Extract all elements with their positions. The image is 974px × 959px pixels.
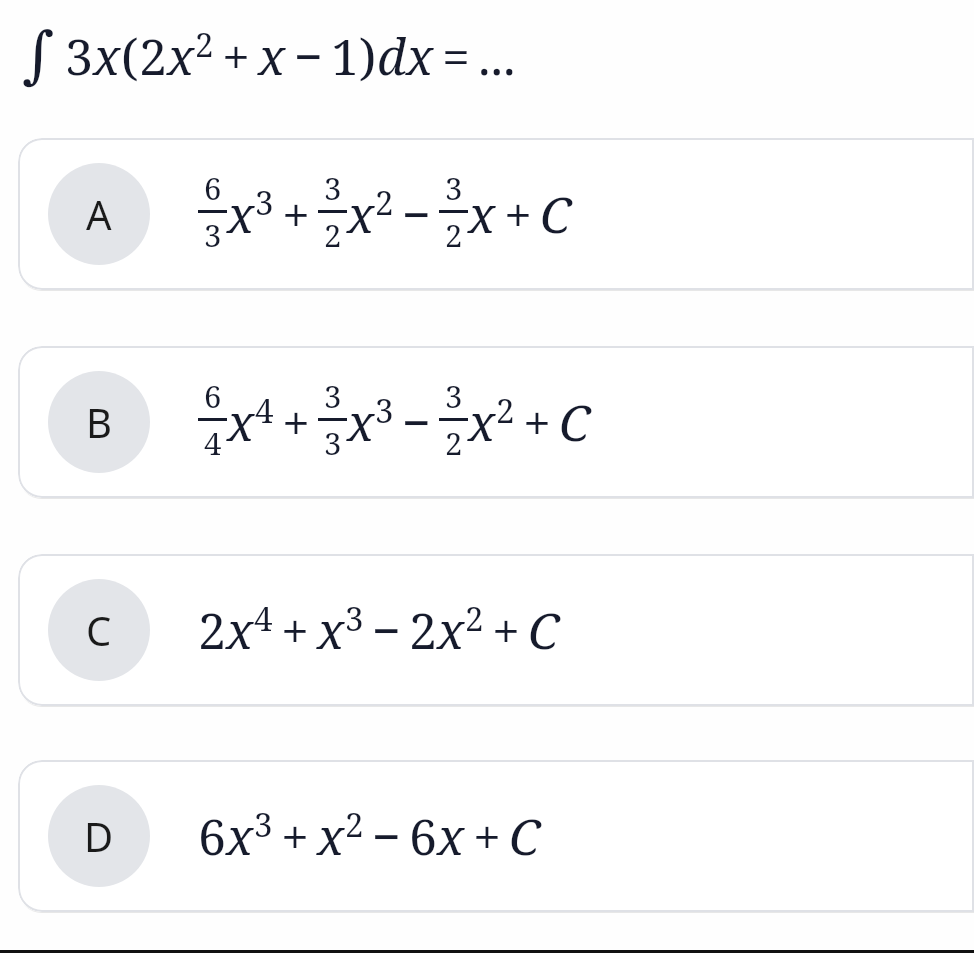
staticText: 3 <box>65 22 93 90</box>
staticText: 2 <box>345 802 364 847</box>
staticText: + <box>492 596 520 664</box>
staticText: x <box>468 180 496 248</box>
staticText: 2 <box>496 388 515 433</box>
staticText: x <box>468 388 496 456</box>
staticText: x <box>93 22 121 90</box>
button[interactable]: D <box>18 760 974 912</box>
staticText: x <box>227 388 255 456</box>
staticText: − <box>402 388 431 456</box>
staticText: 2 <box>198 596 226 664</box>
staticText: − <box>372 802 401 870</box>
staticText: ( <box>121 22 139 90</box>
staticText: 2 <box>445 422 463 464</box>
staticText: x <box>347 180 375 248</box>
button[interactable]: B <box>18 346 974 498</box>
staticText: 2 <box>445 214 463 256</box>
staticText: + <box>504 180 532 248</box>
staticText: C <box>86 603 112 657</box>
staticText: 3 <box>345 596 364 641</box>
staticText: C <box>540 180 572 248</box>
staticText: C <box>528 596 560 664</box>
staticText: x <box>437 596 465 664</box>
staticText: + <box>523 388 551 456</box>
staticText: x <box>317 596 345 664</box>
staticText: A <box>86 187 112 241</box>
staticText: x <box>167 22 195 90</box>
staticText: ... <box>478 22 516 90</box>
staticText: 3 <box>324 167 342 209</box>
staticText: 3 <box>254 802 273 847</box>
button[interactable]: C <box>18 554 974 706</box>
staticText: 2 <box>139 22 167 90</box>
staticText: x <box>258 22 286 90</box>
staticText: 4 <box>254 596 273 641</box>
staticText: x <box>226 802 254 870</box>
staticText: x <box>347 388 375 456</box>
staticText: = <box>442 22 470 90</box>
staticText: 2 <box>195 22 214 67</box>
staticText: − <box>294 22 323 90</box>
staticText: 3 <box>204 214 222 256</box>
staticText: D <box>84 809 114 863</box>
staticText: 3 <box>324 375 342 417</box>
staticText: 6 <box>204 167 222 209</box>
staticText: ) <box>359 22 377 90</box>
staticText: C <box>559 388 591 456</box>
staticText: 6 <box>204 375 222 417</box>
button[interactable]: A <box>18 138 974 290</box>
staticText: 2 <box>465 596 484 641</box>
staticText: + <box>281 596 309 664</box>
staticText: x <box>226 596 254 664</box>
staticText: + <box>473 802 501 870</box>
staticText: x <box>406 22 434 90</box>
staticText: 2 <box>409 596 437 664</box>
staticText: 1 <box>331 22 359 90</box>
staticText: x <box>227 180 255 248</box>
staticText: 4 <box>204 422 222 464</box>
staticText: 3 <box>324 422 342 464</box>
staticText: x <box>317 802 345 870</box>
staticText: + <box>282 388 310 456</box>
staticText: − <box>402 180 431 248</box>
staticText: 2 <box>324 214 342 256</box>
staticText: + <box>222 22 250 90</box>
staticText: + <box>281 802 309 870</box>
staticText: ∫ <box>22 18 55 90</box>
staticText: 6 <box>198 802 226 870</box>
staticText: − <box>372 596 401 664</box>
staticText: C <box>509 802 541 870</box>
staticText: 6 <box>409 802 437 870</box>
staticText: 3 <box>445 167 463 209</box>
staticText: 4 <box>255 388 274 433</box>
staticText: B <box>86 395 112 449</box>
staticText: 3 <box>375 388 394 433</box>
staticText: x <box>437 802 465 870</box>
staticText: + <box>282 180 310 248</box>
staticText: 2 <box>375 180 394 225</box>
staticText: 3 <box>255 180 274 225</box>
staticText: d <box>377 22 406 90</box>
staticText: 3 <box>445 375 463 417</box>
